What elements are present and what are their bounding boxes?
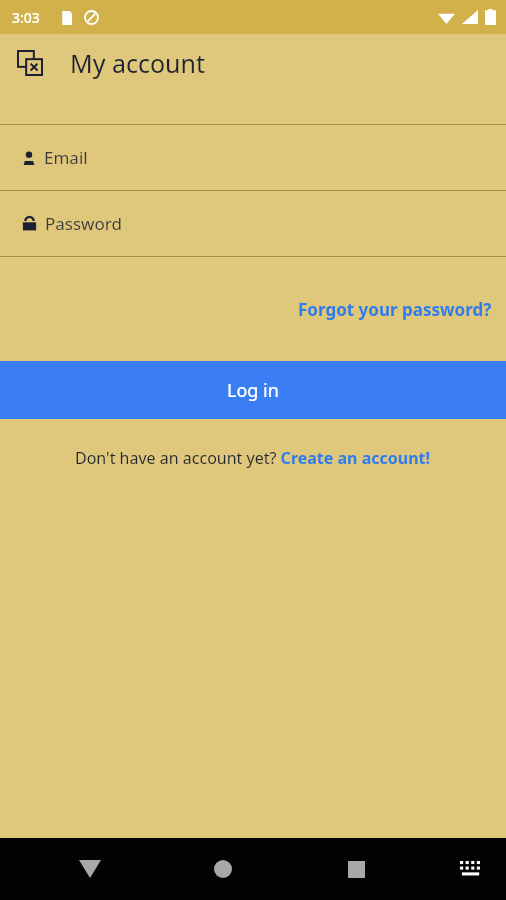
staticText: 3:03 (12, 8, 40, 27)
staticText: Log in (227, 378, 279, 403)
staticText: Password (45, 212, 122, 235)
button[interactable]: Email (0, 125, 506, 190)
button[interactable]: Recent apps (330, 843, 382, 895)
button[interactable]: Password (0, 191, 506, 256)
button[interactable]: Back (64, 843, 116, 895)
button[interactable]: Log in (0, 361, 506, 419)
button[interactable]: Home (197, 843, 249, 895)
button[interactable]: Don't have an account yet? Create an acc… (65, 441, 441, 475)
staticText: Don't have an account yet? Create an acc… (75, 447, 431, 469)
staticText: Email (44, 146, 88, 169)
button[interactable]: Show keyboard (446, 843, 498, 895)
staticText: Forgot your password? (298, 298, 492, 321)
button[interactable]: Forgot your password? (284, 290, 506, 329)
button[interactable]: Close (8, 41, 52, 85)
staticText: My account (70, 46, 206, 80)
